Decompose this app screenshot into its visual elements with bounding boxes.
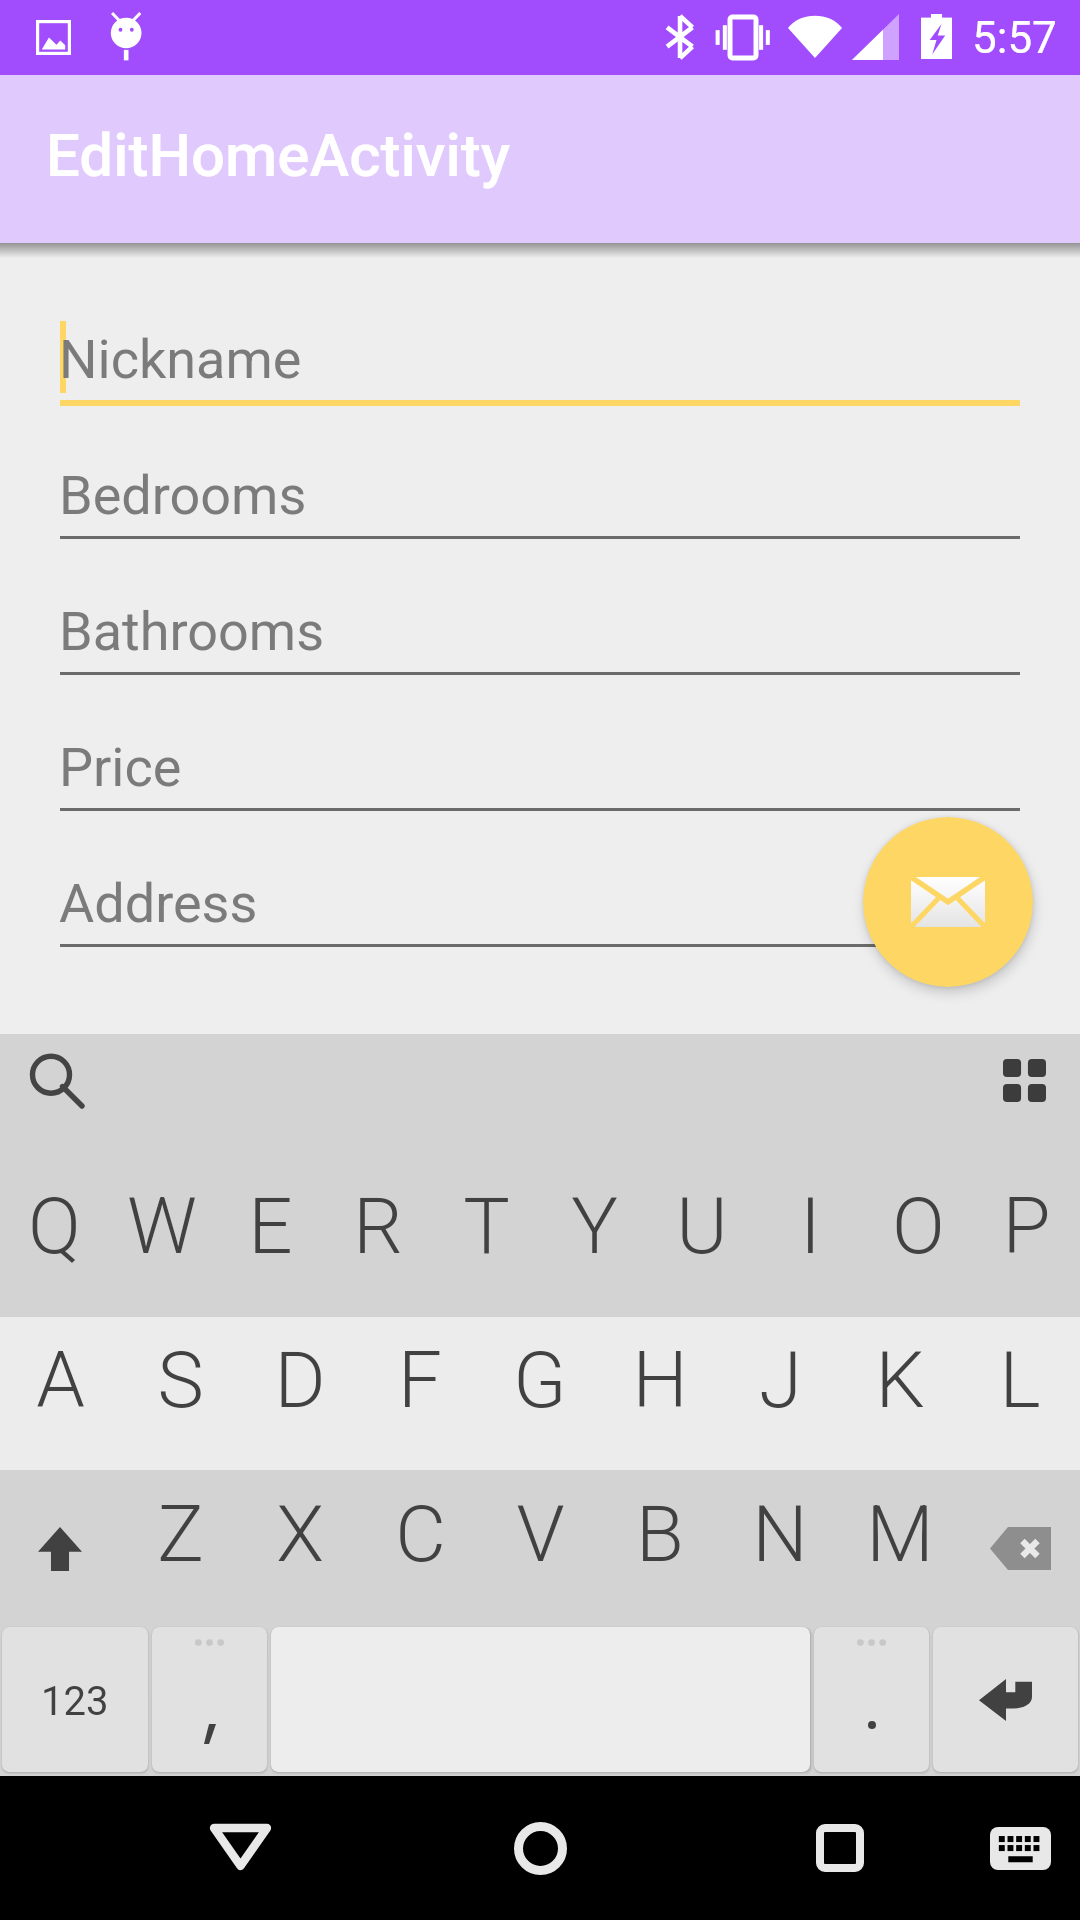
- button[interactable]: T: [432, 1160, 540, 1317]
- button[interactable]: P: [972, 1160, 1080, 1317]
- staticText: 5:57: [972, 12, 1057, 64]
- button[interactable]: X: [240, 1470, 360, 1627]
- button[interactable]: Price: [0, 700, 1080, 836]
- button[interactable]: E: [216, 1160, 324, 1317]
- staticText: T: [463, 1181, 510, 1272]
- staticText: Price: [59, 736, 182, 799]
- staticText: Nickname: [59, 328, 302, 391]
- button[interactable]: N: [720, 1470, 840, 1627]
- staticText: A: [36, 1335, 85, 1426]
- button[interactable]: Q: [0, 1160, 108, 1317]
- staticText: M: [866, 1489, 934, 1580]
- staticText: Y: [571, 1181, 618, 1272]
- button[interactable]: Z: [120, 1470, 240, 1627]
- staticText: I: [800, 1181, 821, 1272]
- button[interactable]: S: [120, 1317, 240, 1470]
- button[interactable]: Send email: [863, 817, 1033, 987]
- staticText: R: [353, 1181, 403, 1272]
- button[interactable]: Address: [0, 836, 1080, 972]
- staticText: P: [1002, 1181, 1051, 1272]
- button[interactable]: Voice search: [10, 1038, 90, 1118]
- staticText: Q: [28, 1181, 81, 1272]
- staticText: B: [636, 1489, 684, 1580]
- button[interactable]: Recents: [770, 1778, 910, 1918]
- button[interactable]: M: [840, 1470, 960, 1627]
- button[interactable]: R: [324, 1160, 432, 1317]
- button[interactable]: O: [864, 1160, 972, 1317]
- staticText: U: [676, 1181, 728, 1272]
- button[interactable]: A: [0, 1317, 120, 1470]
- staticText: X: [276, 1489, 324, 1580]
- staticText: L: [999, 1335, 1041, 1426]
- staticText: V: [516, 1489, 565, 1580]
- button[interactable]: B: [600, 1470, 720, 1627]
- staticText: F: [398, 1335, 442, 1426]
- staticText: W: [127, 1181, 197, 1272]
- button[interactable]: Y: [540, 1160, 648, 1317]
- staticText: E: [248, 1181, 293, 1272]
- staticText: H: [632, 1335, 688, 1426]
- staticText: C: [395, 1489, 446, 1580]
- button[interactable]: Shift: [0, 1470, 120, 1627]
- button[interactable]: I: [756, 1160, 864, 1317]
- button[interactable]: Bedrooms: [0, 428, 1080, 564]
- staticText: S: [157, 1335, 204, 1426]
- button[interactable]: [814, 1627, 929, 1772]
- button[interactable]: G: [480, 1317, 600, 1470]
- staticText: D: [274, 1335, 326, 1426]
- staticText: G: [513, 1335, 567, 1426]
- button[interactable]: 123: [2, 1627, 148, 1772]
- staticText: O: [892, 1181, 945, 1272]
- button[interactable]: Nickname: [0, 292, 1080, 428]
- staticText: 123: [41, 1678, 109, 1725]
- button[interactable]: Keyboard options: [987, 1043, 1061, 1117]
- button[interactable]: Back: [170, 1777, 310, 1917]
- button[interactable]: [933, 1627, 1078, 1772]
- button[interactable]: U: [648, 1160, 756, 1317]
- staticText: Z: [157, 1489, 204, 1580]
- button[interactable]: D: [240, 1317, 360, 1470]
- button[interactable]: Switch keyboard: [960, 1788, 1080, 1908]
- button[interactable]: Bathrooms: [0, 564, 1080, 700]
- button[interactable]: J: [720, 1317, 840, 1470]
- button[interactable]: C: [360, 1470, 480, 1627]
- button[interactable]: [152, 1627, 267, 1772]
- button[interactable]: L: [960, 1317, 1080, 1470]
- button[interactable]: Home: [470, 1778, 610, 1918]
- button[interactable]: W: [108, 1160, 216, 1317]
- button[interactable]: H: [600, 1317, 720, 1470]
- staticText: N: [752, 1489, 808, 1580]
- button[interactable]: K: [840, 1317, 960, 1470]
- button[interactable]: F: [360, 1317, 480, 1470]
- staticText: Bathrooms: [59, 600, 325, 663]
- button[interactable]: V: [480, 1470, 600, 1627]
- staticText: K: [875, 1335, 925, 1426]
- staticText: EditHomeActivity: [46, 120, 511, 190]
- button[interactable]: Backspace: [960, 1470, 1080, 1627]
- staticText: Address: [59, 872, 258, 935]
- staticText: Bedrooms: [59, 464, 307, 527]
- staticText: J: [759, 1335, 802, 1426]
